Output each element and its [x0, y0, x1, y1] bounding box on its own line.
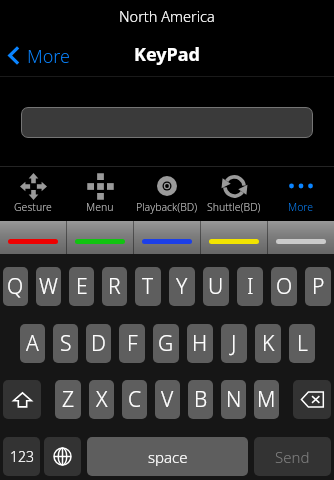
button[interactable]: G	[153, 324, 179, 363]
button[interactable]: Switch keyboard	[44, 437, 81, 476]
button[interactable]: 123	[3, 437, 40, 476]
staticText: J	[231, 329, 237, 358]
button[interactable]: Shift	[3, 380, 41, 419]
button[interactable]: Playback(BD)	[133, 167, 200, 221]
staticText: U	[208, 272, 224, 301]
button[interactable]: Backspace	[293, 380, 331, 419]
button[interactable]: Send	[254, 437, 331, 476]
staticText: G	[158, 329, 174, 358]
button[interactable]: F	[119, 324, 145, 363]
button[interactable]: C	[122, 380, 147, 419]
staticText: Send	[275, 447, 310, 467]
staticText: KeyPad	[134, 42, 200, 67]
button[interactable]: L	[289, 324, 315, 363]
staticText: North America	[119, 6, 215, 26]
button[interactable]: S	[53, 324, 78, 363]
staticText: I	[247, 272, 254, 301]
staticText: P	[312, 272, 325, 301]
staticText: C	[128, 385, 142, 414]
button[interactable]: K	[255, 324, 281, 363]
button[interactable]: A	[20, 324, 45, 363]
staticText: V	[161, 385, 174, 414]
staticText: T	[142, 272, 154, 301]
button[interactable]: Q	[3, 267, 28, 306]
button[interactable]: B	[188, 380, 213, 419]
staticText: More	[27, 44, 70, 69]
staticText: Q	[7, 272, 24, 301]
staticText: Gesture	[14, 200, 52, 214]
button[interactable]: R	[102, 267, 127, 306]
staticText: Playback(BD)	[136, 200, 198, 214]
staticText: Shuttle(BD)	[207, 200, 261, 214]
button[interactable]: Y	[169, 267, 195, 306]
button[interactable]: X	[89, 380, 114, 419]
button[interactable]: More	[267, 167, 334, 221]
button[interactable]: P	[305, 267, 331, 306]
button[interactable]	[268, 221, 334, 254]
staticText: F	[127, 329, 138, 358]
button[interactable]: U	[203, 267, 229, 306]
button[interactable]	[21, 107, 313, 138]
staticText: O	[276, 272, 293, 301]
button[interactable]	[67, 221, 133, 254]
button[interactable]	[134, 221, 200, 254]
staticText: Z	[62, 385, 75, 414]
button[interactable]: O	[271, 267, 297, 306]
staticText: 123	[10, 447, 34, 466]
staticText: A	[26, 329, 39, 358]
button[interactable]: M	[254, 380, 279, 419]
button[interactable]: Shuttle(BD)	[200, 167, 267, 221]
button[interactable]: W	[36, 267, 61, 306]
staticText: More	[288, 200, 314, 214]
staticText: D	[91, 329, 106, 358]
button[interactable]: More	[0, 39, 80, 72]
button[interactable]: E	[69, 267, 94, 306]
staticText: N	[226, 385, 242, 414]
staticText: R	[108, 272, 121, 301]
button[interactable]	[201, 221, 267, 254]
button[interactable]: space	[87, 437, 248, 476]
button[interactable]: V	[155, 380, 180, 419]
staticText: Menu	[86, 200, 114, 214]
staticText: E	[76, 272, 88, 301]
button[interactable]: Gesture	[0, 167, 66, 221]
staticText: W	[39, 272, 58, 301]
button[interactable]: I	[237, 267, 263, 306]
button[interactable]: D	[86, 324, 111, 363]
staticText: B	[194, 385, 208, 414]
button[interactable]: J	[221, 324, 247, 363]
button[interactable]: N	[221, 380, 246, 419]
staticText: S	[60, 329, 72, 358]
staticText: K	[262, 329, 275, 358]
staticText: Y	[176, 272, 188, 301]
button[interactable]: Menu	[66, 167, 133, 221]
staticText: H	[192, 329, 208, 358]
button[interactable]: H	[187, 324, 213, 363]
staticText: space	[148, 447, 188, 467]
staticText: L	[297, 329, 308, 358]
button[interactable]: Z	[55, 380, 81, 419]
staticText: M	[257, 385, 276, 414]
staticText: X	[96, 385, 108, 414]
button[interactable]: T	[135, 267, 161, 306]
button[interactable]	[0, 221, 66, 254]
